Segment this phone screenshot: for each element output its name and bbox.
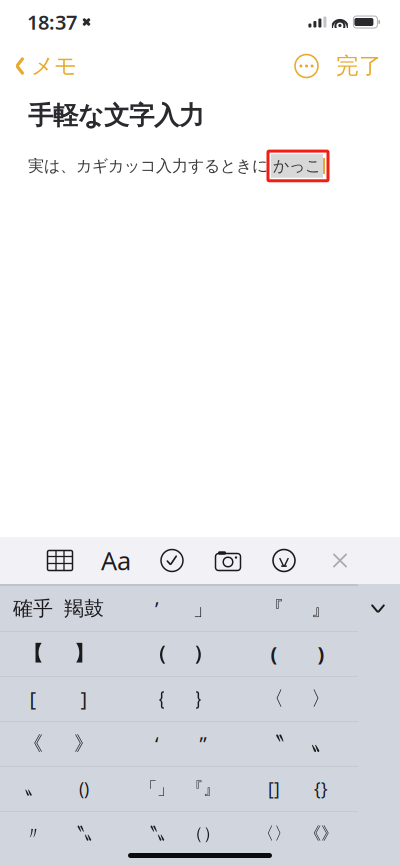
staticText: メモ <box>31 52 77 80</box>
staticText: 18:37 <box>27 9 77 35</box>
staticText: {} <box>314 777 328 800</box>
button[interactable]: 候補を展開 <box>358 586 398 631</box>
button[interactable]: 《 <box>10 721 56 766</box>
button[interactable]: 《》 <box>298 811 344 856</box>
button[interactable]: ） <box>180 631 226 676</box>
staticText: かっこ <box>273 156 321 176</box>
staticText: ｝ <box>193 686 213 711</box>
staticText: 〃 <box>24 823 41 844</box>
staticText: () <box>79 777 89 800</box>
staticText: 〈 <box>264 686 284 711</box>
staticText: 》 <box>74 731 94 756</box>
button[interactable]: [ <box>10 676 56 721</box>
button[interactable]: ’ <box>134 586 180 631</box>
button[interactable]: 「」 <box>134 766 180 811</box>
button[interactable]: 〝 <box>251 721 297 766</box>
staticText: （） <box>186 823 220 844</box>
staticText: 〟 <box>24 778 41 799</box>
button[interactable]: () <box>61 766 107 811</box>
staticText: 《 <box>23 731 43 756</box>
button[interactable]: {} <box>298 766 344 811</box>
button[interactable]: ( <box>251 631 297 676</box>
button[interactable]: [] <box>251 766 297 811</box>
staticText: 完了 <box>336 52 382 80</box>
button[interactable]: その他 <box>287 44 326 88</box>
staticText: 手軽な文字入力 <box>28 100 204 131</box>
button[interactable]: 『 <box>251 586 297 631</box>
staticText: 確乎 <box>13 596 53 621</box>
staticText: Aa <box>101 544 131 577</box>
button[interactable]: チェックリスト <box>144 541 200 579</box>
staticText: 〈〉 <box>257 823 291 844</box>
staticText: 実は、カギカッコ入力するときに <box>28 156 268 176</box>
staticText: 〉 <box>311 686 331 711</box>
button[interactable]: 〉 <box>298 676 344 721</box>
staticText: 羯鼓 <box>64 596 104 621</box>
button[interactable]: 書式 <box>88 541 144 579</box>
staticText: ｛ <box>147 686 167 711</box>
button[interactable]: カメラ <box>200 541 256 579</box>
button[interactable]: 〈 <box>251 676 297 721</box>
button[interactable]: 〟 <box>298 721 344 766</box>
staticText: 『』 <box>186 778 220 799</box>
button[interactable]: ] <box>61 676 107 721</box>
button[interactable]: 」 <box>180 586 226 631</box>
button[interactable]: 〝〟 <box>134 811 180 856</box>
button[interactable]: ) <box>298 631 344 676</box>
staticText: 「」 <box>140 778 174 799</box>
button[interactable]: 表 <box>32 541 88 579</box>
staticText: 〝〟 <box>140 823 174 844</box>
button[interactable]: ” <box>180 721 226 766</box>
button[interactable]: 閉じる <box>312 541 368 579</box>
staticText: ’ <box>155 595 159 622</box>
button[interactable]: 〟 <box>10 766 56 811</box>
staticText: 」 <box>193 596 213 621</box>
staticText: ” <box>199 730 206 757</box>
button[interactable]: ｛ <box>134 676 180 721</box>
button[interactable]: 》 <box>61 721 107 766</box>
staticText: 〝 <box>264 731 284 756</box>
button[interactable]: 】 <box>61 631 107 676</box>
button[interactable]: マークアップ <box>256 541 312 579</box>
button[interactable]: 』 <box>298 586 344 631</box>
staticText: ） <box>193 641 213 666</box>
staticText: ] <box>80 685 87 712</box>
staticText: 〟 <box>311 731 331 756</box>
staticText: ) <box>317 640 324 667</box>
staticText: 《》 <box>304 823 338 844</box>
staticText: 〝〟 <box>67 823 101 844</box>
staticText: （ <box>147 641 167 666</box>
button[interactable]: 【 <box>10 631 56 676</box>
staticText: 【 <box>23 641 43 666</box>
button[interactable]: 確乎 <box>10 586 56 631</box>
staticText: ‘ <box>155 730 159 757</box>
staticText: [] <box>268 777 280 800</box>
staticText: 』 <box>311 596 331 621</box>
button[interactable]: ｝ <box>180 676 226 721</box>
staticText: [ <box>29 685 36 712</box>
button[interactable]: 〝〟 <box>61 811 107 856</box>
staticText: 】 <box>74 641 94 666</box>
button[interactable]: 『』 <box>180 766 226 811</box>
button[interactable]: ‘ <box>134 721 180 766</box>
button[interactable]: 羯鼓 <box>61 586 107 631</box>
button[interactable]: （ <box>134 631 180 676</box>
button[interactable]: 完了 <box>326 44 400 88</box>
staticText: 『 <box>264 596 284 621</box>
button[interactable]: 〃 <box>10 811 56 856</box>
button[interactable]: 〈〉 <box>251 811 297 856</box>
staticText: ( <box>270 640 277 667</box>
button[interactable]: （） <box>180 811 226 856</box>
button[interactable]: メモ <box>0 44 87 88</box>
